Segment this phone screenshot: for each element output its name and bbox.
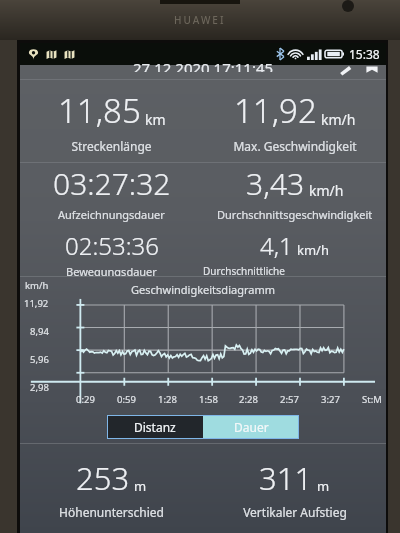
staticText: 0:29 [76,393,95,406]
staticText: 1:58 [199,393,218,406]
staticText: Durchschnittliche Bewegungsgeschwin… [203,264,386,276]
staticText: 11,92 [234,88,317,133]
staticText: 311 [259,457,313,499]
staticText: Höhenunterschied [59,504,164,520]
staticText: 02:53:36 [65,229,159,262]
other: GPS fix [64,49,75,60]
staticText: 2:57 [280,393,299,406]
staticText: 0:59 [117,393,136,406]
staticText: km/h [309,181,344,200]
staticText: 2:28 [239,393,258,406]
staticText: Geschwindigkeitsdiagramm [131,282,275,297]
staticText: 15:38 [349,46,380,62]
staticText: Max. Geschwindigkeit [233,138,357,154]
staticText: 253 [76,457,130,499]
staticText: Distanz [134,419,176,435]
button[interactable]: 253 [20,444,203,533]
staticText: HUAWEI [174,13,226,27]
staticText: m [134,477,147,495]
staticText: 8,94 [30,325,49,338]
staticText: Vertikaler Aufstieg [243,504,347,520]
button[interactable]: Save [364,63,380,77]
button[interactable]: 11,85 [20,80,203,162]
staticText: Aufzeichnungsdauer [58,207,165,222]
staticText: 4,1 [260,229,293,262]
staticText: 03:27:32 [53,163,171,204]
staticText: 5,96 [30,353,49,366]
staticText: km/h [321,110,356,129]
staticText: 27.12.2020 17:11:45 [133,58,274,72]
staticText: 2,98 [30,381,49,394]
staticText: 1:28 [158,393,177,406]
staticText: km/h [25,279,49,292]
button[interactable]: Edit [338,63,354,77]
staticText: Bewegungsdauer [66,264,157,276]
button[interactable]: Distanz [107,415,203,439]
button[interactable]: 11,92 [203,80,386,162]
staticText: 11,92 [24,297,49,310]
other: GPS fix [46,49,57,60]
other: Location [28,49,39,60]
staticText: 3,43 [246,163,305,204]
button[interactable]: 311 [203,444,386,533]
staticText: km [145,110,166,129]
staticText: m [317,477,330,495]
staticText: km/h [297,241,329,259]
staticText: Durchschnittsgeschwindigkeit [217,207,373,222]
staticText: 3:27 [321,393,340,406]
staticText: St:M [362,393,382,406]
staticText: Dauer [234,419,269,435]
staticText: 11,85 [58,88,141,133]
staticText: Streckenlänge [71,138,152,154]
button[interactable]: Dauer [203,415,299,439]
